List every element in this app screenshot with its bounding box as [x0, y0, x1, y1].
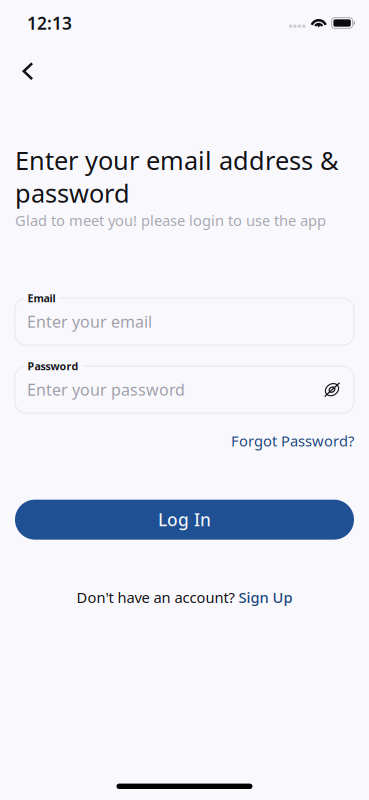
staticText: Enter your password	[27, 379, 185, 400]
staticText: Glad to meet you! please login to use th…	[15, 211, 326, 230]
staticText: password	[15, 176, 130, 210]
button[interactable]: Log In	[15, 500, 354, 540]
staticText: Email	[27, 291, 55, 305]
button[interactable]: Back	[0, 54, 46, 88]
staticText: Don't have an account?	[76, 588, 234, 607]
staticText: Enter your email address &	[15, 143, 339, 177]
staticText: Log In	[158, 508, 211, 531]
button[interactable]: Sign Up	[234, 588, 292, 607]
staticText: Forgot Password?	[231, 431, 354, 451]
staticText: Enter your email	[27, 311, 152, 332]
button[interactable]: Forgot Password?	[231, 430, 354, 452]
staticText: Password	[27, 359, 78, 373]
staticText: Sign Up	[234, 588, 292, 607]
staticText: 12:13	[27, 11, 72, 34]
